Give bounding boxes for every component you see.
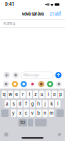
button[interactable]: Switch keyboard [4, 132, 8, 137]
button[interactable]: x [17, 109, 22, 117]
button[interactable]: h [36, 100, 41, 108]
button[interactable]: Zrušiť [46, 9, 65, 18]
button[interactable]: u [39, 91, 45, 98]
staticText: c [25, 110, 28, 116]
staticText: l [57, 101, 58, 107]
staticText: x [19, 110, 21, 116]
button[interactable]: o [52, 91, 57, 98]
button[interactable]: Send [55, 71, 62, 79]
button[interactable]: iMessage [21, 72, 53, 78]
staticText: a [6, 101, 9, 107]
button[interactable]: 123 [18, 119, 27, 126]
staticText: h [37, 101, 40, 107]
staticText: b [37, 110, 40, 116]
staticText: k [50, 101, 52, 107]
staticText: s [13, 101, 15, 107]
button[interactable]: App Store [21, 81, 27, 87]
button[interactable]: p [58, 91, 63, 98]
staticText: q [3, 92, 6, 97]
staticText: i [48, 92, 49, 97]
staticText: 9:41 [5, 2, 14, 7]
button[interactable]: Dictate [58, 133, 61, 136]
staticText: p [59, 92, 62, 97]
staticText: t [29, 92, 30, 97]
button[interactable]: k [49, 100, 54, 108]
staticText: o [53, 92, 56, 97]
button[interactable]: e [14, 91, 19, 98]
button[interactable]: g [30, 100, 35, 108]
staticText: z [34, 92, 37, 97]
button[interactable] [56, 109, 64, 117]
button[interactable]: i [46, 91, 51, 98]
staticText: j [45, 101, 46, 107]
staticText: w [8, 92, 12, 97]
button[interactable]: Add attachment [3, 71, 11, 79]
staticText: m [49, 110, 53, 116]
button[interactable]: n [42, 109, 48, 117]
staticText: e [15, 92, 18, 97]
button[interactable]: Photos [12, 81, 18, 87]
staticText: d [18, 101, 21, 107]
staticText: 123 [20, 120, 25, 125]
button[interactable]: y [11, 109, 16, 117]
staticText: y [12, 110, 15, 116]
button[interactable]: z [33, 91, 38, 98]
button[interactable]: l [55, 100, 60, 108]
button[interactable]: c [24, 109, 29, 117]
button[interactable]: Memoji [38, 81, 44, 87]
button[interactable]: s [11, 100, 16, 108]
staticText: v [31, 110, 34, 116]
staticText: r [22, 92, 24, 97]
staticText: f [25, 101, 27, 107]
button[interactable]: a [5, 100, 10, 108]
button[interactable]: q [1, 91, 7, 98]
button[interactable]: m [49, 109, 54, 117]
staticText: Nová správa [21, 12, 43, 16]
button[interactable]: w [8, 91, 13, 98]
button[interactable]: j [42, 100, 48, 108]
staticText: n [44, 110, 47, 116]
button[interactable]: t [27, 91, 32, 98]
button[interactable]: Camera [3, 81, 9, 87]
button[interactable]: Music [29, 81, 36, 87]
button[interactable]: f [23, 100, 29, 108]
button[interactable] [35, 119, 47, 126]
button[interactable]: Komu: [0, 19, 65, 27]
staticText: iMessage [23, 73, 39, 77]
button[interactable]: More [56, 81, 62, 87]
button[interactable]: b [36, 109, 41, 117]
staticText: u [40, 92, 43, 97]
button[interactable]: d [17, 100, 22, 108]
button[interactable]: Cash [47, 81, 53, 87]
staticText: g [31, 101, 34, 107]
button[interactable]: Camera [12, 72, 19, 79]
staticText: Zrušiť [49, 12, 61, 16]
button[interactable] [1, 109, 8, 117]
button[interactable]: r [20, 91, 26, 98]
staticText: Komu: [3, 21, 15, 26]
button[interactable]: v [30, 109, 35, 117]
